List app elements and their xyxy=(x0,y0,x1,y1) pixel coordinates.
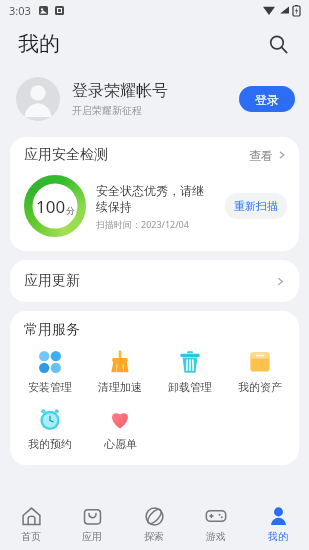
button[interactable]: 我的预约 xyxy=(14,404,85,453)
staticText: 安全状态优秀，请继 续保持 xyxy=(96,183,204,215)
button[interactable]: 首页 xyxy=(0,498,61,550)
button[interactable]: 我的 xyxy=(247,498,309,550)
button[interactable]: 心愿单 xyxy=(85,404,155,453)
staticText: 登录 xyxy=(255,92,279,107)
staticText: 安装管理 xyxy=(28,380,72,394)
button[interactable]: 清理加速 xyxy=(85,347,155,396)
staticText: 应用 xyxy=(82,530,102,543)
button[interactable]: 重新扫描 xyxy=(225,193,287,219)
button[interactable]: 探索 xyxy=(123,498,185,550)
staticText: 我的预约 xyxy=(28,437,72,451)
staticText: 扫描时间：2023/12/04 xyxy=(96,218,189,230)
button[interactable]: 安装管理 xyxy=(14,347,85,396)
staticText: 应用安全检测 xyxy=(24,146,108,164)
button[interactable]: 登录荣耀帐号 xyxy=(0,68,309,130)
staticText: 登录荣耀帐号 xyxy=(72,81,168,101)
staticText: 探索 xyxy=(144,530,164,543)
staticText: 分 xyxy=(66,205,75,216)
staticText: 我的资产 xyxy=(238,380,282,394)
staticText: 常用服务 xyxy=(24,321,80,339)
staticText: 卸载管理 xyxy=(168,380,212,394)
button[interactable]: Search xyxy=(261,27,295,61)
button[interactable]: 应用安全检测 xyxy=(10,137,299,173)
staticText: 开启荣耀新征程 xyxy=(72,104,142,117)
staticText: 我的 xyxy=(18,31,60,57)
button[interactable]: 应用更新 xyxy=(10,260,299,302)
staticText: 3:03 xyxy=(9,3,31,18)
button[interactable]: 应用 xyxy=(61,498,123,550)
button[interactable]: 游戏 xyxy=(185,498,247,550)
button[interactable]: 我的资产 xyxy=(225,347,295,396)
staticText: 游戏 xyxy=(206,530,226,543)
button[interactable]: 登录 xyxy=(239,86,295,112)
staticText: 100 xyxy=(36,195,66,218)
button[interactable]: 卸载管理 xyxy=(155,347,225,396)
staticText: 首页 xyxy=(21,530,41,543)
staticText: 心愿单 xyxy=(104,437,137,451)
staticText: 我的 xyxy=(268,530,288,543)
staticText: 应用更新 xyxy=(24,272,80,290)
staticText: 清理加速 xyxy=(98,380,142,394)
staticText: 查看 xyxy=(249,148,273,163)
staticText: 重新扫描 xyxy=(234,199,278,213)
